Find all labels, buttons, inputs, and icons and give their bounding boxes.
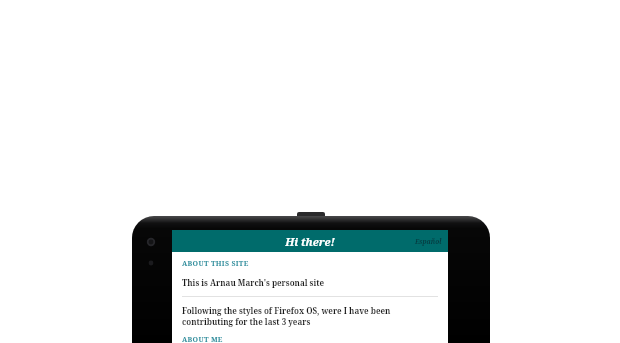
button[interactable]: Español [409,234,448,249]
button[interactable]: Hi there! [285,234,335,249]
button[interactable]: ABOUT THIS SITE [182,259,438,269]
staticText: This is Arnau March's personal site [182,277,438,288]
staticText: Following the styles of Firefox OS, were… [182,305,438,327]
staticText: ABOUT THIS SITE [182,259,249,269]
staticText: Español [415,237,442,246]
button[interactable]: ABOUT ME [182,335,438,343]
staticText: ABOUT ME [182,335,223,343]
